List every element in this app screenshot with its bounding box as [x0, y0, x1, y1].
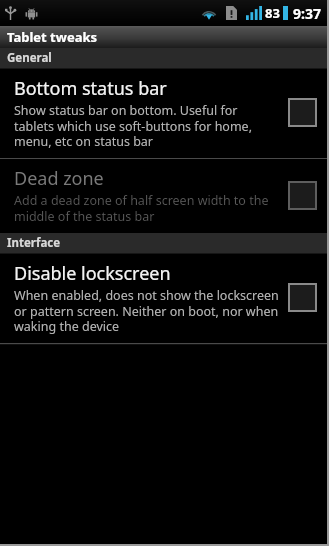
staticText: Interface	[7, 235, 61, 251]
staticText: Bottom status bar	[14, 76, 167, 101]
staticText: Disable lockscreen	[14, 261, 171, 286]
button[interactable]: Toggle setting	[288, 283, 317, 312]
button[interactable]: Toggle setting	[288, 98, 317, 127]
staticText: Show status bar on bottom. Useful for ta…	[14, 102, 280, 149]
staticText: 9:37	[293, 4, 321, 23]
button[interactable]: Dead zone	[0, 159, 327, 233]
staticText: Add a dead zone of half screen width to …	[14, 192, 280, 224]
staticText: When enabled, does not show the lockscre…	[14, 287, 280, 334]
button[interactable]: Bottom status bar	[0, 69, 327, 158]
staticText: Dead zone	[14, 166, 104, 191]
staticText: 83	[265, 4, 280, 22]
button[interactable]: Toggle setting	[288, 181, 317, 210]
staticText: Tablet tweaks	[7, 28, 98, 46]
staticText: General	[7, 50, 52, 66]
button[interactable]: Disable lockscreen	[0, 254, 327, 343]
